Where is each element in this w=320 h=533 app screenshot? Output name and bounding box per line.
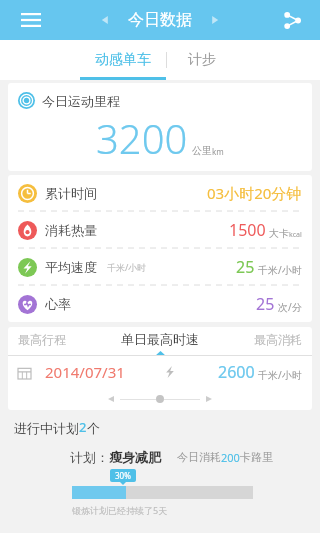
button[interactable]: Previous day: [94, 9, 116, 31]
staticText: 心率: [45, 296, 71, 312]
button[interactable]: 动感单车: [80, 40, 166, 80]
staticText: 03小时20分钟: [207, 183, 302, 203]
button[interactable]: Share: [276, 4, 308, 36]
staticText: 公里: [192, 144, 212, 157]
staticText: 瘦身减肥: [109, 449, 161, 465]
button[interactable]: Next record: [200, 390, 218, 408]
staticText: km: [212, 146, 224, 157]
staticText: 消耗热量: [45, 222, 97, 238]
staticText: 锻炼计划已经持续了5天: [72, 504, 168, 516]
staticText: 个: [87, 420, 100, 436]
button[interactable]: Menu: [14, 3, 48, 37]
button[interactable]: 计步: [167, 40, 237, 80]
staticText: 大卡: [269, 227, 289, 240]
staticText: kcal: [289, 230, 302, 240]
staticText: 今日数据: [128, 10, 192, 30]
button[interactable]: 最高行程: [18, 332, 108, 347]
staticText: 2600: [218, 361, 255, 383]
staticText: 2: [79, 418, 87, 436]
staticText: 计划：: [70, 449, 109, 465]
staticText: 千米/小时: [258, 263, 302, 277]
staticText: 1500: [229, 219, 266, 241]
button[interactable]: 平均速度: [18, 249, 302, 285]
staticText: 单日最高时速: [121, 331, 199, 347]
staticText: 25: [236, 256, 255, 278]
button[interactable]: 单日最高时速: [108, 331, 212, 347]
staticText: 计步: [188, 51, 216, 69]
staticText: 平均速度: [45, 259, 97, 275]
staticText: 千米/小时: [258, 368, 302, 382]
button[interactable]: 最高消耗: [212, 332, 302, 347]
staticText: 最高行程: [18, 332, 66, 347]
button[interactable]: Previous record: [102, 390, 120, 408]
button[interactable]: 心率: [18, 286, 302, 322]
button[interactable]: 消耗热量: [18, 212, 302, 248]
staticText: 2014/07/31: [45, 362, 125, 382]
button[interactable]: 计划：: [70, 449, 320, 465]
button[interactable]: Next day: [204, 9, 226, 31]
staticText: 累计时间: [45, 185, 97, 201]
staticText: 今日消耗: [177, 450, 221, 464]
staticText: 200: [221, 450, 240, 465]
staticText: 动感单车: [95, 51, 151, 69]
staticText: 千米/小时: [107, 261, 147, 273]
staticText: 今日运动里程: [42, 93, 120, 109]
staticText: 3200: [96, 111, 188, 165]
staticText: 卡路里: [240, 450, 273, 464]
button[interactable]: 累计时间: [18, 175, 302, 211]
staticText: 25: [256, 293, 275, 315]
staticText: 次/分: [278, 300, 302, 314]
staticText: 进行中计划: [14, 420, 79, 436]
staticText: 30%: [115, 470, 131, 481]
staticText: 最高消耗: [254, 332, 302, 347]
button[interactable]: 今日运动里程: [8, 83, 312, 171]
